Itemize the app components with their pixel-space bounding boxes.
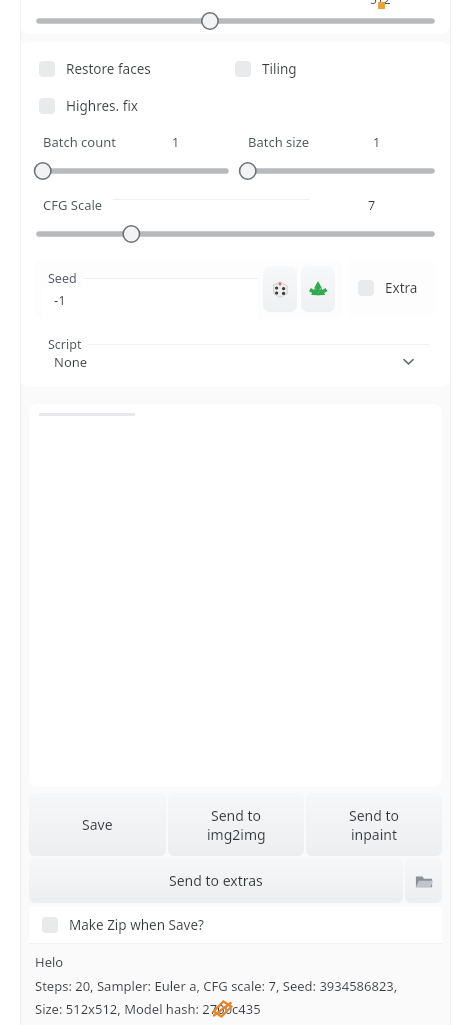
staticText: Seed	[48, 270, 77, 287]
staticText: inpaint	[351, 825, 398, 844]
staticText: None	[54, 353, 88, 371]
button[interactable]: Randomize seed	[263, 266, 297, 312]
staticText: 1	[373, 134, 381, 151]
staticText: img2img	[207, 825, 266, 844]
button[interactable]: Save	[29, 793, 166, 856]
staticText: Send to	[349, 806, 400, 825]
button[interactable]: Open images folder	[405, 858, 442, 903]
staticText: 512	[370, 0, 391, 7]
staticText: Send to	[211, 806, 262, 825]
staticText: Restore faces	[66, 60, 151, 78]
staticText: Highres. fix	[66, 97, 138, 115]
staticText: -1	[54, 291, 66, 309]
button[interactable]: Restore faces	[39, 58, 235, 80]
staticText: 1	[172, 134, 180, 151]
button[interactable]: Highres. fix	[39, 95, 432, 117]
button[interactable]: Batch size	[242, 129, 434, 180]
button[interactable]: Extra	[358, 277, 418, 299]
staticText: Batch count	[43, 133, 116, 151]
staticText: Send to extras	[169, 871, 263, 890]
button[interactable]: Make Zip when Save?	[42, 914, 204, 936]
button[interactable]: Batch count	[37, 129, 228, 180]
staticText: 7	[368, 197, 376, 214]
staticText: Tiling	[262, 60, 297, 78]
button[interactable]: CFG Scale	[37, 192, 434, 243]
staticText: Steps: 20, Sampler: Euler a, CFG scale: …	[35, 977, 398, 995]
button[interactable]: Send to	[168, 793, 304, 856]
staticText: Batch size	[248, 133, 310, 151]
staticText: Size: 512x512, Model hash: 2700c435	[35, 1000, 261, 1018]
staticText: Script	[48, 336, 82, 353]
staticText: Make Zip when Save?	[69, 916, 204, 934]
staticText: CFG Scale	[43, 196, 103, 214]
button[interactable]: Tiling	[235, 58, 432, 80]
button[interactable]: Send to extras	[29, 858, 403, 903]
button[interactable]: None	[42, 340, 429, 378]
staticText: Helo	[35, 953, 64, 971]
button[interactable]: Reuse seed	[301, 266, 335, 312]
button[interactable]: Send to	[306, 793, 442, 856]
staticText: Save	[82, 815, 113, 834]
staticText: Extra	[385, 279, 418, 297]
